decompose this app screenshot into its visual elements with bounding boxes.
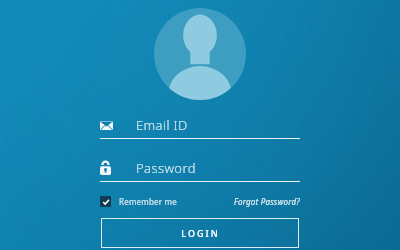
button[interactable]: Remember me [100,196,177,207]
staticText: Forgot Password? [234,196,300,207]
button[interactable]: LOGIN [101,218,299,248]
staticText: Email ID [136,116,188,134]
staticText: Password [136,159,196,177]
button[interactable]: Forgot Password? [234,196,300,207]
staticText: LOGIN [181,227,220,239]
staticText: Remember me [119,196,177,207]
